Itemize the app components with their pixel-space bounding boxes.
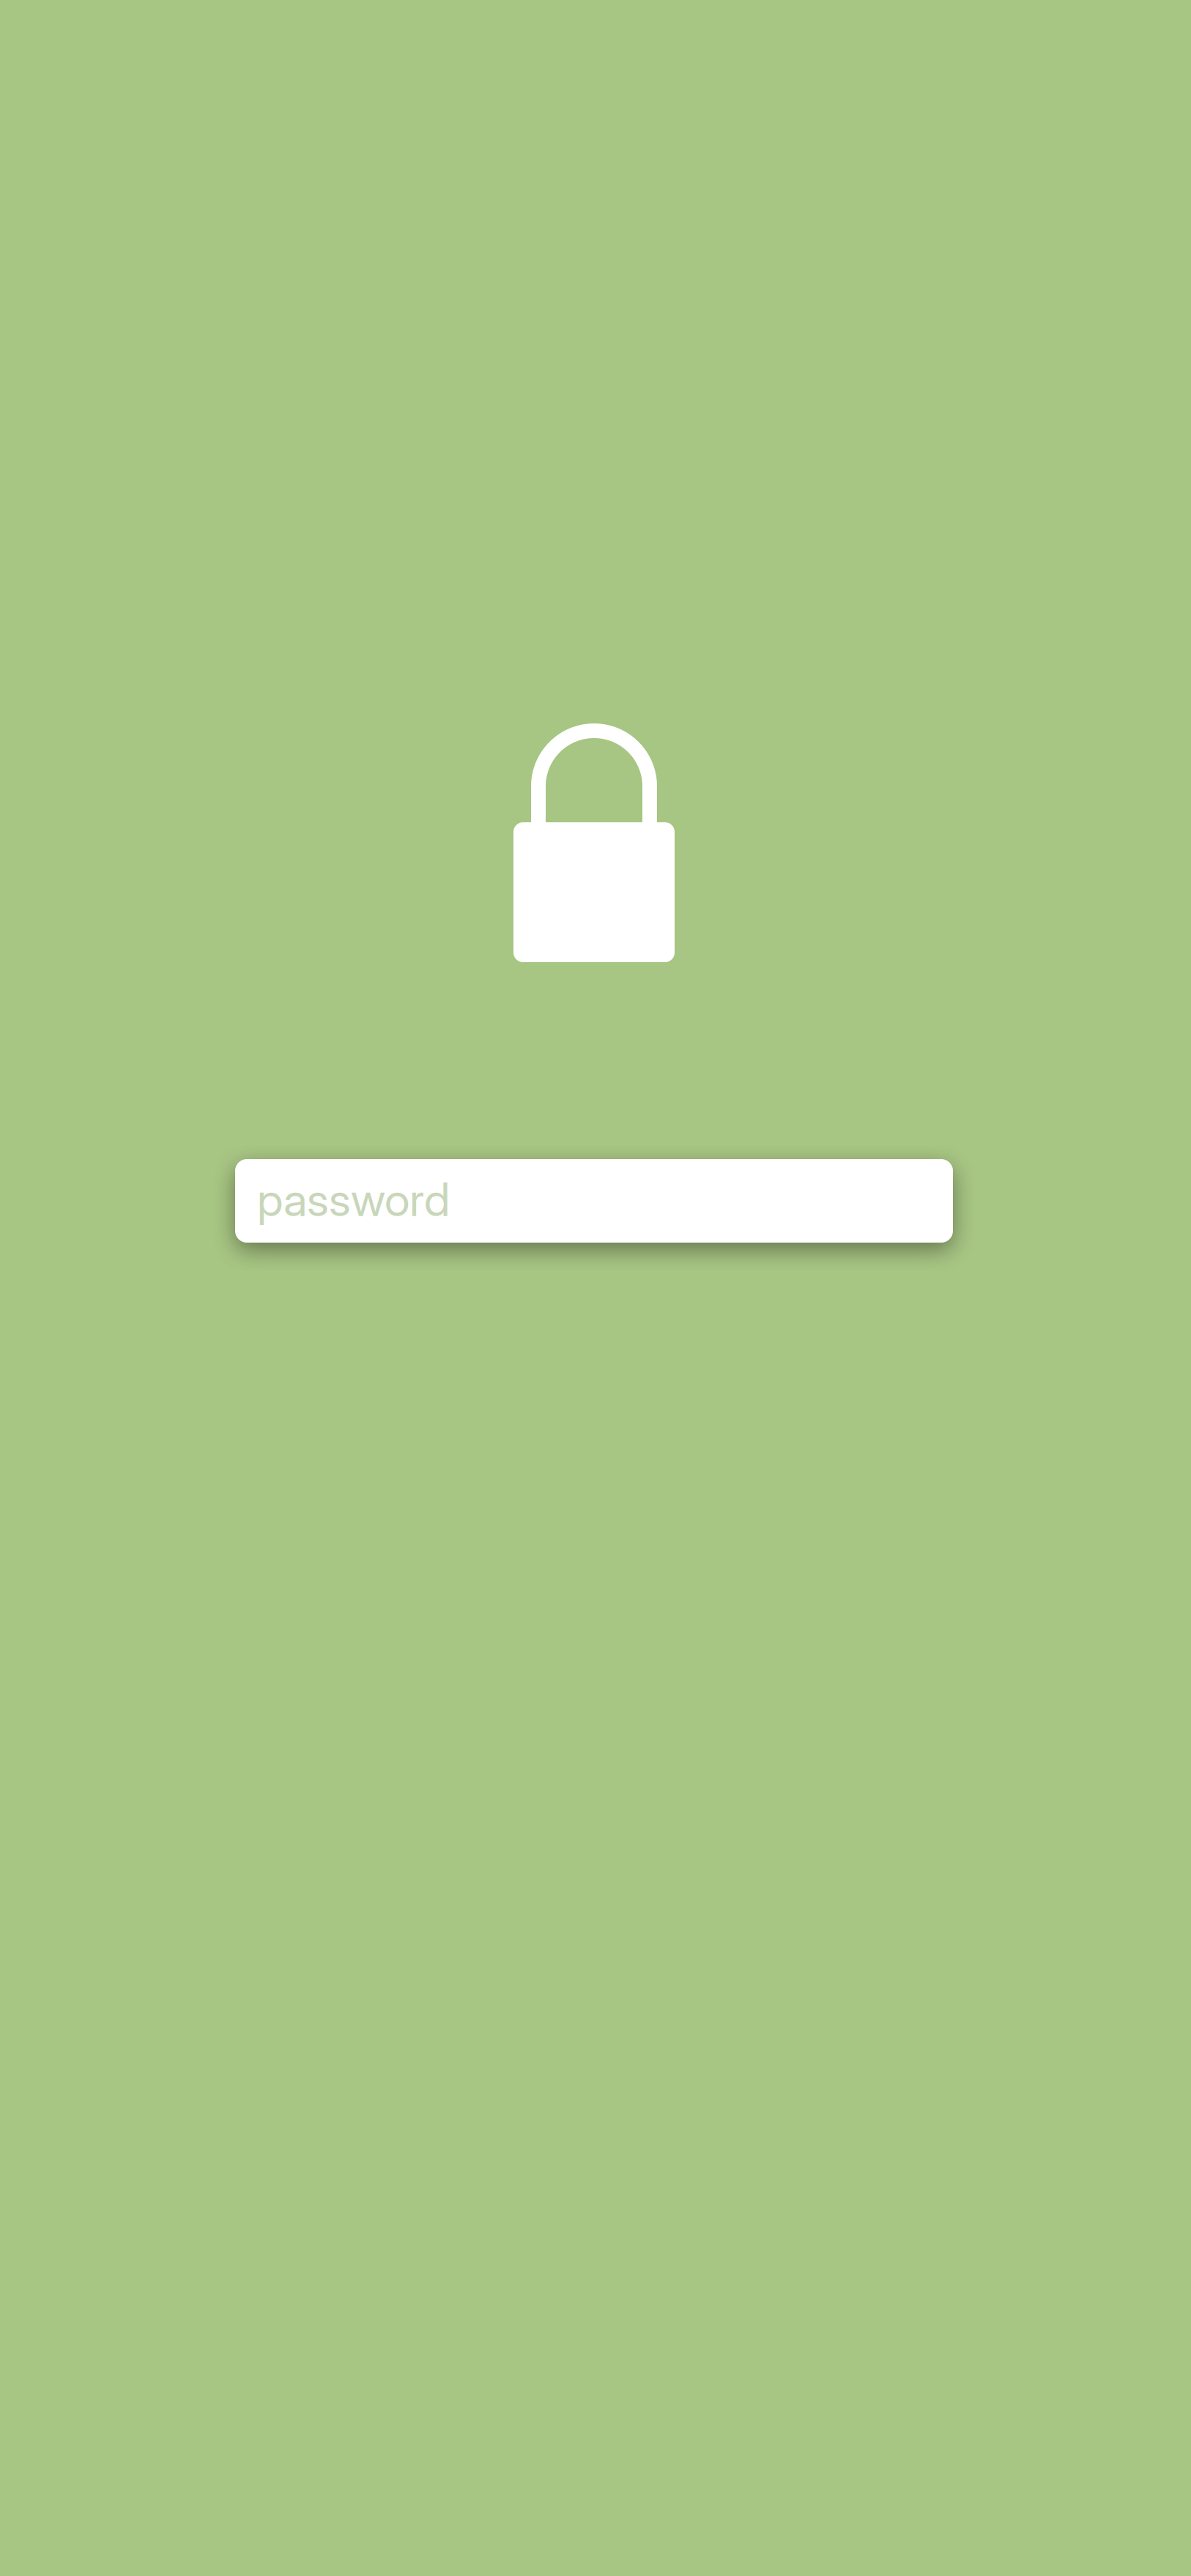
button[interactable]: Password (235, 1159, 953, 1243)
staticText: password (257, 1172, 450, 1227)
